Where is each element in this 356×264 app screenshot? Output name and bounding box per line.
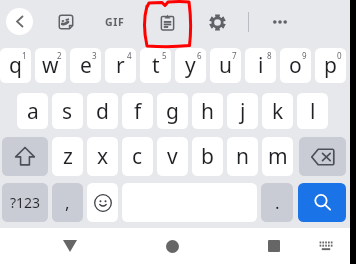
staticText: m (268, 142, 288, 171)
button[interactable]: g (157, 93, 188, 129)
button[interactable]: Back (6, 8, 33, 35)
button[interactable]: u (210, 48, 241, 83)
staticText: 9 (302, 50, 307, 61)
button[interactable]: Stickers (51, 7, 81, 37)
button[interactable]: Switch keyboard (311, 236, 341, 256)
button[interactable]: i (245, 48, 276, 83)
button[interactable]: m (262, 137, 293, 176)
staticText: l (310, 97, 316, 126)
button[interactable]: backspace (299, 137, 346, 176)
button[interactable]: Settings (202, 7, 232, 37)
staticText: g (166, 97, 179, 126)
button[interactable]: , (52, 183, 83, 222)
staticText: GIF (105, 15, 125, 29)
staticText: b (201, 142, 214, 171)
button[interactable]: Home (157, 236, 187, 256)
button[interactable]: Recents (259, 236, 289, 256)
staticText: i (258, 51, 264, 80)
button[interactable]: ?123 (2, 183, 48, 222)
button[interactable]: emoji (87, 183, 118, 222)
button[interactable]: l (297, 93, 328, 129)
button[interactable]: Clipboard (152, 7, 182, 37)
staticText: r (116, 51, 125, 80)
staticText: 3 (92, 50, 97, 61)
staticText: 6 (197, 50, 202, 61)
button[interactable]: b (192, 137, 223, 176)
staticText: t (152, 51, 160, 80)
staticText: 7 (232, 50, 237, 61)
button[interactable]: h (192, 93, 223, 129)
staticText: 4 (127, 50, 132, 61)
staticText: w (42, 51, 59, 80)
staticText: s (62, 97, 73, 126)
button[interactable]: s (52, 93, 83, 129)
button[interactable]: j (227, 93, 258, 129)
staticText: x (97, 142, 109, 171)
staticText: h (201, 97, 214, 126)
button[interactable]: q (0, 48, 31, 83)
staticText: f (134, 97, 142, 126)
button[interactable]: x (87, 137, 118, 176)
button[interactable]: f (122, 93, 153, 129)
staticText: d (96, 97, 109, 126)
staticText: 8 (267, 50, 272, 61)
button[interactable]: GIF (100, 7, 130, 37)
button[interactable]: p (315, 48, 346, 83)
button[interactable]: k (262, 93, 293, 129)
button[interactable]: v (157, 137, 188, 176)
button[interactable]: Back (55, 236, 85, 256)
button[interactable]: y (175, 48, 206, 83)
staticText: p (324, 51, 337, 80)
staticText: 2 (57, 50, 62, 61)
staticText: z (63, 142, 73, 171)
staticText: 0 (337, 50, 342, 61)
staticText: n (236, 142, 249, 171)
staticText: 1 (22, 50, 27, 61)
staticText: ?123 (10, 193, 41, 212)
button[interactable]: d (87, 93, 118, 129)
staticText: a (27, 97, 39, 126)
staticText: o (289, 51, 302, 80)
staticText: 5 (162, 50, 167, 61)
button[interactable]: z (52, 137, 83, 176)
button[interactable]: n (227, 137, 258, 176)
button[interactable]: shift (2, 137, 48, 176)
staticText: y (185, 51, 196, 80)
button[interactable]: search (298, 183, 346, 222)
staticText: c (132, 142, 143, 171)
button[interactable]: t (140, 48, 171, 83)
button[interactable]: . (261, 183, 293, 222)
staticText: v (167, 142, 178, 171)
staticText: e (80, 51, 92, 80)
staticText: . (275, 191, 280, 214)
button[interactable]: r (105, 48, 136, 83)
staticText: j (240, 97, 246, 126)
button[interactable]: e (70, 48, 101, 83)
staticText: , (65, 191, 70, 214)
button[interactable]: c (122, 137, 153, 176)
staticText: k (272, 97, 284, 126)
button[interactable]: More options (265, 7, 295, 37)
button[interactable]: a (17, 93, 48, 129)
staticText: u (219, 51, 232, 80)
button[interactable]: o (280, 48, 311, 83)
button[interactable]: w (35, 48, 66, 83)
staticText: q (9, 51, 22, 80)
